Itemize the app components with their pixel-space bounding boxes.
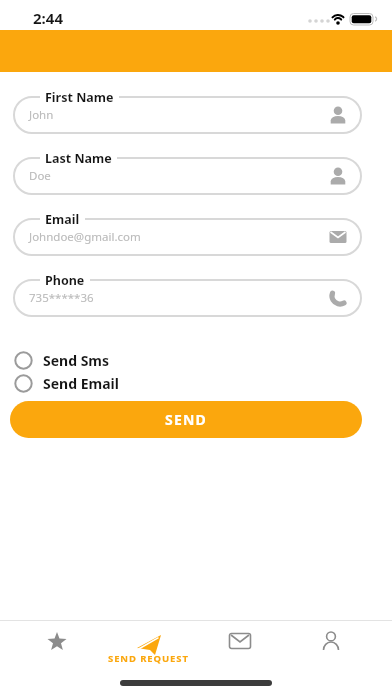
staticText: Phone (45, 272, 85, 289)
button[interactable]: SEND (10, 401, 362, 438)
staticText: Doe (29, 168, 51, 184)
staticText: SEND (165, 410, 207, 429)
staticText: Last Name (45, 150, 112, 167)
button[interactable]: Johndoe@gmail.com (13, 218, 362, 256)
button[interactable]: SEND REQUEST (103, 629, 194, 669)
button[interactable] (11, 621, 103, 661)
staticText: Johndoe@gmail.com (29, 229, 141, 245)
staticText: 735*****36 (29, 290, 94, 306)
button[interactable]: Send Sms (14, 349, 392, 372)
button[interactable] (285, 621, 376, 661)
staticText: SEND REQUEST (108, 652, 189, 665)
staticText: John (29, 107, 54, 123)
button[interactable]: Send Email (14, 372, 392, 395)
staticText: Send Sms (43, 351, 110, 370)
button[interactable] (194, 621, 285, 661)
staticText: Send Email (43, 374, 119, 393)
button[interactable]: Doe (13, 157, 362, 195)
staticText: 2:44 (33, 8, 63, 28)
button[interactable]: John (13, 96, 362, 134)
staticText: Email (45, 211, 80, 228)
staticText: First Name (45, 89, 114, 106)
button[interactable]: 735*****36 (13, 279, 362, 317)
